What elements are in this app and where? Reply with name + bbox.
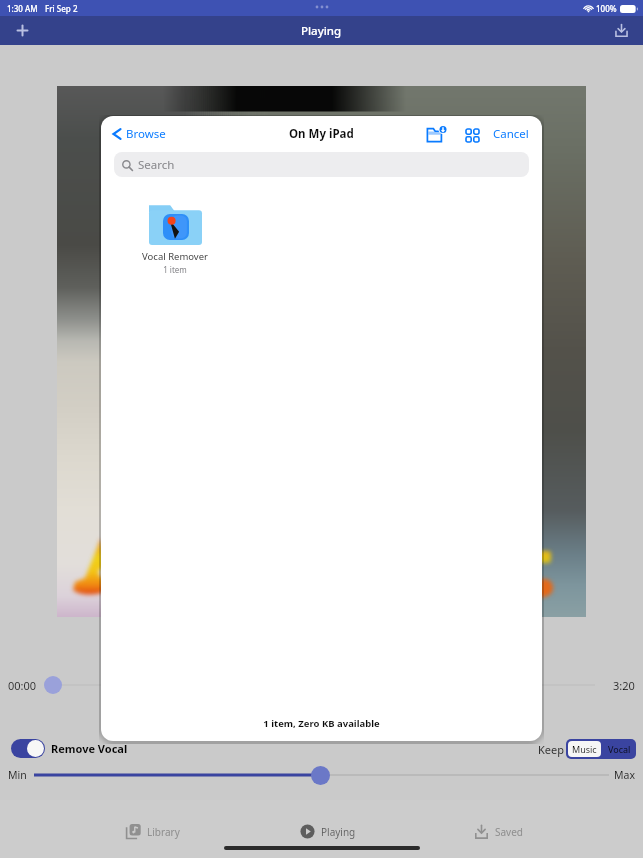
- button[interactable]: Seek: [44, 676, 62, 694]
- button[interactable]: Grid view: [461, 121, 481, 147]
- staticText: 1 item: [125, 264, 225, 275]
- staticText: Playing: [321, 825, 356, 839]
- button[interactable]: Add: [0, 16, 44, 45]
- staticText: Vocal Remover: [125, 250, 225, 263]
- staticText: Max: [614, 768, 635, 782]
- staticText: 3:20: [613, 678, 635, 693]
- staticText: Min: [8, 768, 27, 782]
- button[interactable]: Saved: [466, 820, 531, 843]
- button[interactable]: Cancel: [493, 126, 529, 142]
- staticText: 100%: [596, 3, 617, 14]
- staticText: On My iPad: [289, 126, 354, 142]
- button[interactable]: Download: [599, 16, 643, 45]
- button[interactable]: Vocal: [603, 739, 636, 759]
- button[interactable]: Browse: [112, 126, 166, 142]
- staticText: Remove Vocal: [51, 741, 128, 756]
- staticText: Fri Sep 2: [45, 3, 78, 14]
- staticText: Search: [138, 157, 175, 173]
- staticText: 1 item, Zero KB available: [101, 717, 542, 730]
- staticText: 00:00: [8, 678, 37, 693]
- staticText: 1:30 AM: [7, 3, 38, 14]
- button[interactable]: Playing: [292, 820, 364, 843]
- staticText: Saved: [495, 825, 523, 839]
- staticText: Vocal: [608, 743, 631, 755]
- button[interactable]: New Folder: [425, 121, 449, 147]
- staticText: Library: [147, 825, 180, 839]
- button[interactable]: Music: [568, 741, 601, 757]
- button[interactable]: Level: [311, 766, 330, 785]
- staticText: Keep: [538, 742, 564, 757]
- staticText: Music: [572, 743, 597, 755]
- button[interactable]: Search: [114, 152, 529, 177]
- staticText: Playing: [301, 23, 342, 39]
- button[interactable]: Remove Vocal: [11, 739, 128, 758]
- button[interactable]: Library: [118, 820, 188, 843]
- staticText: Browse: [126, 126, 166, 142]
- button[interactable]: Vocal Remover: [125, 204, 225, 275]
